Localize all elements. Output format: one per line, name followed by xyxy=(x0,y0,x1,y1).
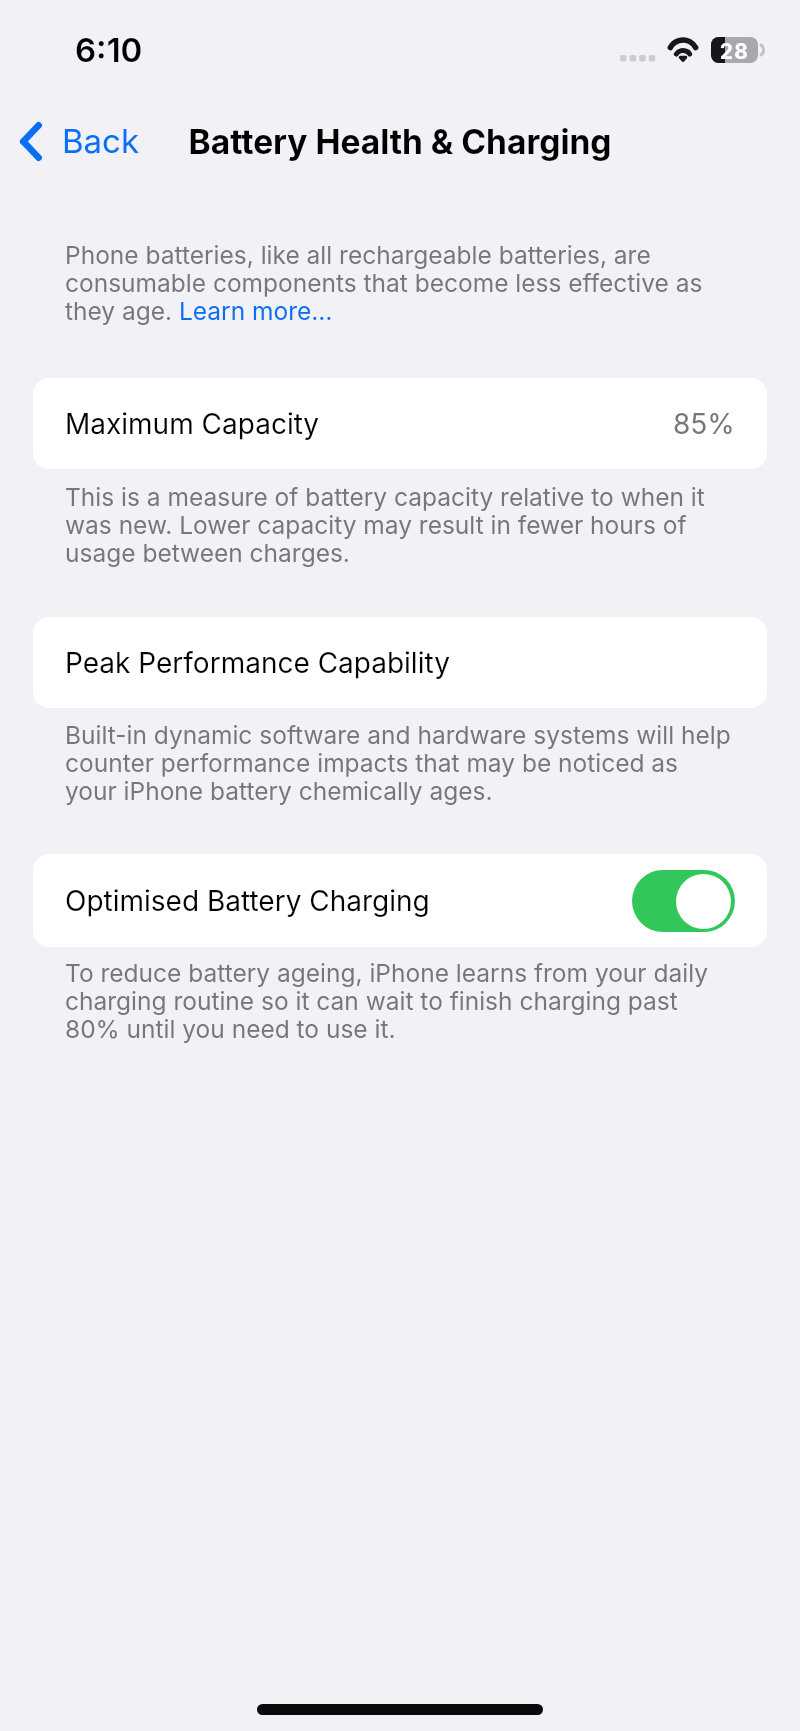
staticText: Maximum Capacity xyxy=(65,407,320,441)
button[interactable]: Peak Performance Capability xyxy=(33,617,767,708)
button[interactable]: Back xyxy=(10,112,154,170)
staticText: 85% xyxy=(673,407,735,441)
button[interactable]: Optimised Battery Charging xyxy=(33,854,767,947)
staticText: 28 xyxy=(717,39,752,64)
staticText: Back xyxy=(62,121,140,161)
staticText: 6:10 xyxy=(75,30,143,70)
staticText: Built-in dynamic software and hardware s… xyxy=(65,721,735,805)
staticText: To reduce battery ageing, iPhone learns … xyxy=(65,959,735,1043)
button[interactable]: Learn more xyxy=(179,297,336,325)
staticText: Battery Health & Charging xyxy=(0,122,800,163)
staticText: Phone batteries, like all rechargeable b… xyxy=(65,241,735,325)
staticText: Optimised Battery Charging xyxy=(65,884,430,918)
button[interactable]: Optimised Battery Charging toggle xyxy=(632,870,735,932)
staticText: This is a measure of battery capacity re… xyxy=(65,483,735,567)
staticText: Peak Performance Capability xyxy=(65,646,450,680)
button[interactable]: Maximum Capacity xyxy=(33,378,767,469)
